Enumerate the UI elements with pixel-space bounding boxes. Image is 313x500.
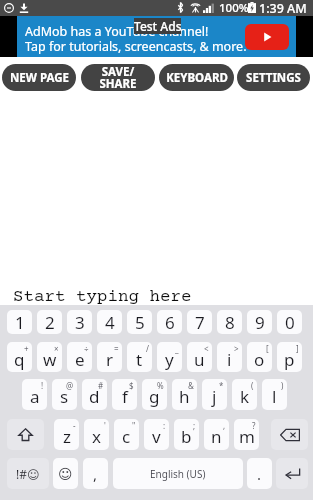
button[interactable]: ): [262, 379, 287, 410]
button[interactable]: 1: [7, 310, 32, 334]
button[interactable]: 5: [127, 310, 152, 334]
staticText: x: [92, 425, 101, 448]
staticText: 6: [165, 311, 175, 334]
staticText: %: [157, 380, 164, 391]
staticText: 9: [255, 311, 265, 334]
staticText: ": [132, 420, 136, 431]
button[interactable]: (: [232, 379, 257, 410]
button[interactable]: SAVE/ SHARE: [81, 64, 155, 91]
staticText: t: [136, 348, 143, 371]
staticText: ?: [252, 420, 256, 431]
button[interactable]: #: [82, 379, 107, 410]
staticText: @: [66, 380, 74, 391]
button[interactable]: 9: [247, 310, 272, 334]
staticText: Test Ads: [134, 18, 181, 34]
staticText: !#☺: [16, 466, 40, 482]
staticText: d: [89, 385, 100, 408]
staticText: y: [165, 348, 174, 371]
staticText: ÷: [84, 343, 89, 354]
button[interactable]: Symbols: [7, 458, 49, 489]
staticText: 0: [285, 311, 295, 334]
button[interactable]: >: [217, 342, 242, 372]
staticText: 4: [105, 311, 115, 334]
staticText: :: [163, 420, 166, 431]
staticText: ': [104, 420, 106, 431]
staticText: (: [251, 380, 254, 391]
button[interactable]: @: [52, 379, 77, 410]
button[interactable]: ,: [204, 419, 229, 450]
staticText: +: [24, 343, 29, 354]
staticText: k: [240, 385, 250, 408]
staticText: =: [114, 343, 119, 354]
staticText: z: [63, 425, 71, 448]
button[interactable]: ?: [234, 419, 259, 450]
staticText: e: [75, 348, 85, 371]
staticText: Tap for tutorials, screencasts, & more.: [25, 38, 247, 55]
staticText: English (US): [150, 467, 206, 481]
staticText: r: [106, 348, 114, 371]
button[interactable]: 0: [277, 310, 302, 334]
button[interactable]: 6: [157, 310, 182, 334]
button[interactable]: *: [202, 379, 227, 410]
button[interactable]: ;: [174, 419, 199, 450]
staticText: SAVE/ SHARE: [99, 64, 137, 91]
staticText: .: [257, 464, 262, 484]
button[interactable]: KEYBOARD: [159, 64, 234, 91]
button[interactable]: +: [7, 342, 32, 372]
staticText: Start typing here: [13, 287, 192, 307]
button[interactable]: SETTINGS: [237, 64, 310, 91]
staticText: -: [73, 420, 76, 431]
button[interactable]: %: [142, 379, 167, 410]
button[interactable]: Enter: [276, 458, 308, 489]
staticText: m: [239, 425, 255, 448]
button[interactable]: $: [112, 379, 137, 410]
button[interactable]: Emoji: [53, 458, 78, 489]
button[interactable]: ': [84, 419, 109, 450]
staticText: !: [41, 380, 44, 391]
staticText: v: [152, 425, 161, 448]
staticText: ×: [54, 343, 59, 354]
staticText: w: [43, 348, 57, 371]
button[interactable]: /: [127, 342, 152, 372]
button[interactable]: &: [172, 379, 197, 410]
button[interactable]: NEW PAGE: [2, 64, 76, 91]
staticText: ]: [296, 343, 299, 354]
button[interactable]: !: [22, 379, 47, 410]
staticText: g: [149, 385, 160, 408]
button[interactable]: 2: [37, 310, 62, 334]
staticText: n: [211, 425, 222, 448]
staticText: SETTINGS: [246, 70, 301, 86]
button[interactable]: English (US): [113, 458, 243, 489]
button[interactable]: ,: [83, 458, 108, 489]
button[interactable]: _: [157, 342, 182, 372]
button[interactable]: ÷: [67, 342, 92, 372]
button[interactable]: =: [97, 342, 122, 372]
staticText: ,: [223, 420, 226, 431]
button[interactable]: :: [144, 419, 169, 450]
staticText: [: [266, 343, 269, 354]
staticText: f: [122, 385, 128, 408]
button[interactable]: .: [247, 458, 272, 489]
staticText: s: [60, 385, 69, 408]
button[interactable]: <: [187, 342, 212, 372]
staticText: ☺: [58, 466, 73, 482]
button[interactable]: 7: [187, 310, 212, 334]
button[interactable]: -: [54, 419, 79, 450]
staticText: ;: [193, 420, 196, 431]
button[interactable]: ×: [37, 342, 62, 372]
button[interactable]: Shift: [7, 419, 44, 450]
staticText: 2: [45, 311, 55, 334]
button[interactable]: 8: [217, 310, 242, 334]
button[interactable]: [: [247, 342, 272, 372]
button[interactable]: 3: [67, 310, 92, 334]
staticText: *: [219, 380, 224, 391]
staticText: c: [122, 425, 131, 448]
button[interactable]: 4: [97, 310, 122, 334]
staticText: &: [188, 380, 194, 391]
staticText: #: [98, 380, 104, 391]
staticText: i: [227, 348, 232, 371]
staticText: _: [175, 343, 179, 354]
button[interactable]: ]: [277, 342, 302, 372]
button[interactable]: Backspace: [271, 419, 308, 450]
button[interactable]: ": [114, 419, 139, 450]
